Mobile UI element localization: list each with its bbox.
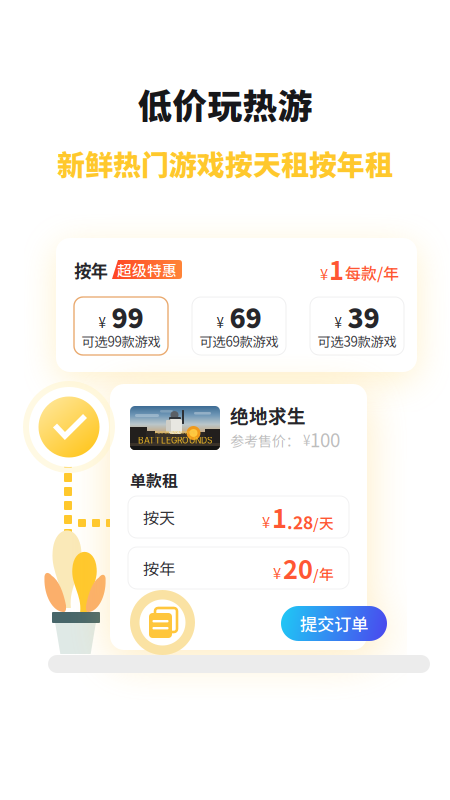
button[interactable]: 按天 <box>128 496 349 538</box>
staticText: 低价玩热游 <box>137 79 312 129</box>
button[interactable]: ¥ <box>74 297 168 355</box>
staticText: 20 <box>283 550 313 586</box>
staticText: 按年 <box>74 257 108 283</box>
staticText: ¥ <box>320 263 328 284</box>
staticText: ¥ <box>98 312 105 332</box>
staticText: 绝地求生 <box>230 401 306 428</box>
staticText: 每款/年 <box>345 261 399 284</box>
button[interactable]: 提交订单 <box>281 606 387 641</box>
button[interactable]: ¥ <box>192 297 286 355</box>
staticText: 可选99款游戏 <box>81 331 160 351</box>
staticText: 超级特惠 <box>117 259 177 280</box>
staticText: 可选39款游戏 <box>317 331 396 351</box>
staticText: PLAYERUNKNOWN'S <box>154 430 195 435</box>
staticText: 按年 <box>143 556 175 580</box>
staticText: 提交订单 <box>300 611 368 636</box>
staticText: 新鲜热门游戏按天租按年租 <box>57 143 393 183</box>
staticText: BATTLEGROUNDS <box>138 435 212 446</box>
staticText: ¥ <box>334 312 341 332</box>
staticText: ¥ <box>300 430 310 449</box>
staticText: ¥ <box>262 511 270 532</box>
staticText: 参考售价： <box>230 430 300 450</box>
staticText: 按天 <box>143 505 175 529</box>
staticText: 1 <box>329 251 344 287</box>
staticText: /天 <box>313 512 334 533</box>
staticText: 69 <box>229 297 261 336</box>
staticText: ¥ <box>216 312 223 332</box>
staticText: ¥ <box>273 562 281 583</box>
staticText: 可选69款游戏 <box>199 331 278 351</box>
staticText: 单款租 <box>130 468 178 492</box>
staticText: 1 <box>272 499 287 535</box>
staticText: 39 <box>347 297 379 336</box>
staticText: .28 <box>287 509 313 534</box>
button[interactable]: 按年 <box>128 547 349 589</box>
button[interactable]: 订单 <box>130 590 195 655</box>
staticText: /年 <box>313 563 334 584</box>
staticText: 99 <box>111 297 143 336</box>
staticText: 100 <box>310 425 340 452</box>
button[interactable]: ¥ <box>310 297 404 355</box>
